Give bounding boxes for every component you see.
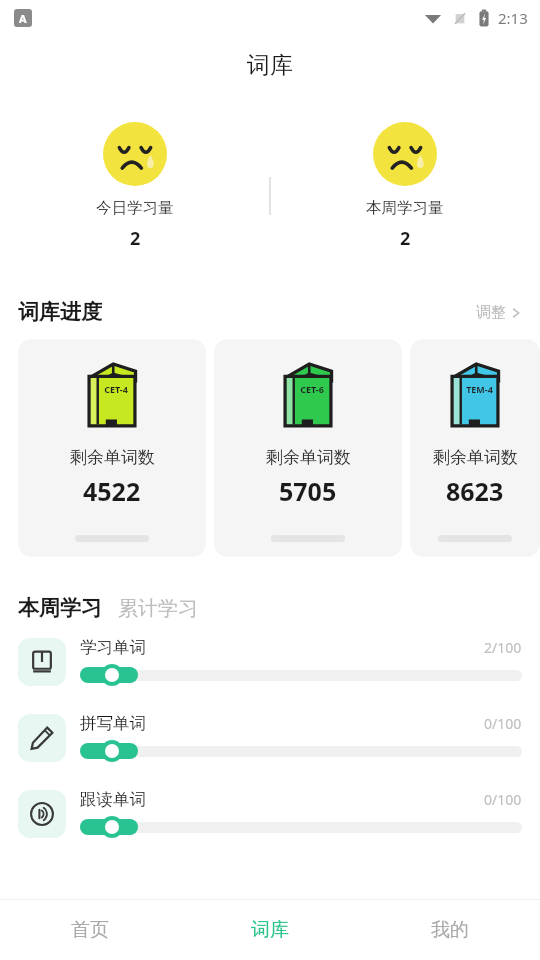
staticText: 剩余单词数	[266, 447, 351, 468]
staticText: 0/100	[484, 714, 522, 733]
staticText: 2	[400, 226, 411, 251]
button[interactable]: 拼写单词	[18, 713, 522, 762]
staticText: 2	[130, 226, 141, 251]
staticText: TEM-4	[466, 383, 493, 395]
staticText: 我的	[431, 918, 469, 942]
staticText: 8623	[446, 474, 504, 508]
button[interactable]: 学习单词	[18, 637, 522, 686]
staticText: 词库	[251, 918, 289, 942]
button[interactable]: CET-6	[214, 339, 402, 557]
button[interactable]: TEM-4	[410, 339, 540, 557]
staticText: CET-4	[104, 383, 128, 395]
button[interactable]: 首页	[0, 900, 180, 960]
staticText: 4522	[83, 474, 141, 508]
button[interactable]: 本周学习	[18, 595, 102, 621]
staticText: 学习单词	[80, 637, 146, 658]
button[interactable]: 本周学习量	[270, 114, 540, 251]
button[interactable]: 今日学习量	[0, 114, 270, 251]
staticText: CET-6	[300, 383, 324, 395]
staticText: 词库进度	[18, 299, 102, 325]
staticText: 调整	[476, 303, 506, 322]
staticText: A	[19, 11, 27, 26]
staticText: 拼写单词	[80, 713, 146, 734]
staticText: 5705	[279, 474, 337, 508]
button[interactable]: 累计学习	[118, 596, 198, 621]
button[interactable]: CET-4	[18, 339, 206, 557]
staticText: 本周学习量	[366, 198, 444, 218]
staticText: 累计学习	[118, 596, 198, 621]
staticText: 0/100	[484, 790, 522, 809]
staticText: 本周学习	[18, 595, 102, 621]
button[interactable]: 词库	[180, 900, 360, 960]
staticText: 词库	[247, 51, 293, 80]
staticText: 今日学习量	[96, 198, 174, 218]
staticText: 首页	[71, 918, 109, 942]
button[interactable]: 调整	[476, 303, 522, 322]
staticText: 2/100	[484, 638, 522, 657]
staticText: 跟读单词	[80, 789, 146, 810]
button[interactable]: 我的	[360, 900, 540, 960]
button[interactable]: 跟读单词	[18, 789, 522, 838]
staticText: 2:13	[498, 8, 528, 28]
staticText: 剩余单词数	[70, 447, 155, 468]
staticText: 剩余单词数	[433, 447, 518, 468]
